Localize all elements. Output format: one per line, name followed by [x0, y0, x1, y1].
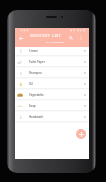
staticText: Handwash — [29, 115, 44, 119]
button[interactable]: Soap — [15, 100, 89, 111]
button[interactable]: More options — [76, 33, 85, 42]
button[interactable]: Toilet Paper — [15, 56, 89, 67]
button[interactable]: Vegetables — [15, 89, 89, 100]
staticText: Toilet Paper — [29, 60, 45, 64]
button[interactable]: Oil — [15, 78, 89, 89]
staticText: MY GROCERY — [46, 40, 65, 43]
staticText: Shampoo — [29, 71, 42, 75]
button[interactable]: Handwash — [15, 111, 89, 122]
button[interactable]: Back — [17, 34, 26, 43]
button[interactable]: Add item — [76, 129, 86, 139]
button[interactable]: Search — [66, 33, 75, 42]
staticText: Vegetables — [29, 93, 44, 97]
staticText: Cream — [29, 49, 38, 53]
staticText: Oil — [29, 82, 33, 86]
staticText: GROCERY LIST — [30, 33, 62, 38]
button[interactable]: Cream — [15, 45, 89, 56]
button[interactable]: Shampoo — [15, 67, 89, 78]
staticText: Soap — [29, 104, 36, 108]
